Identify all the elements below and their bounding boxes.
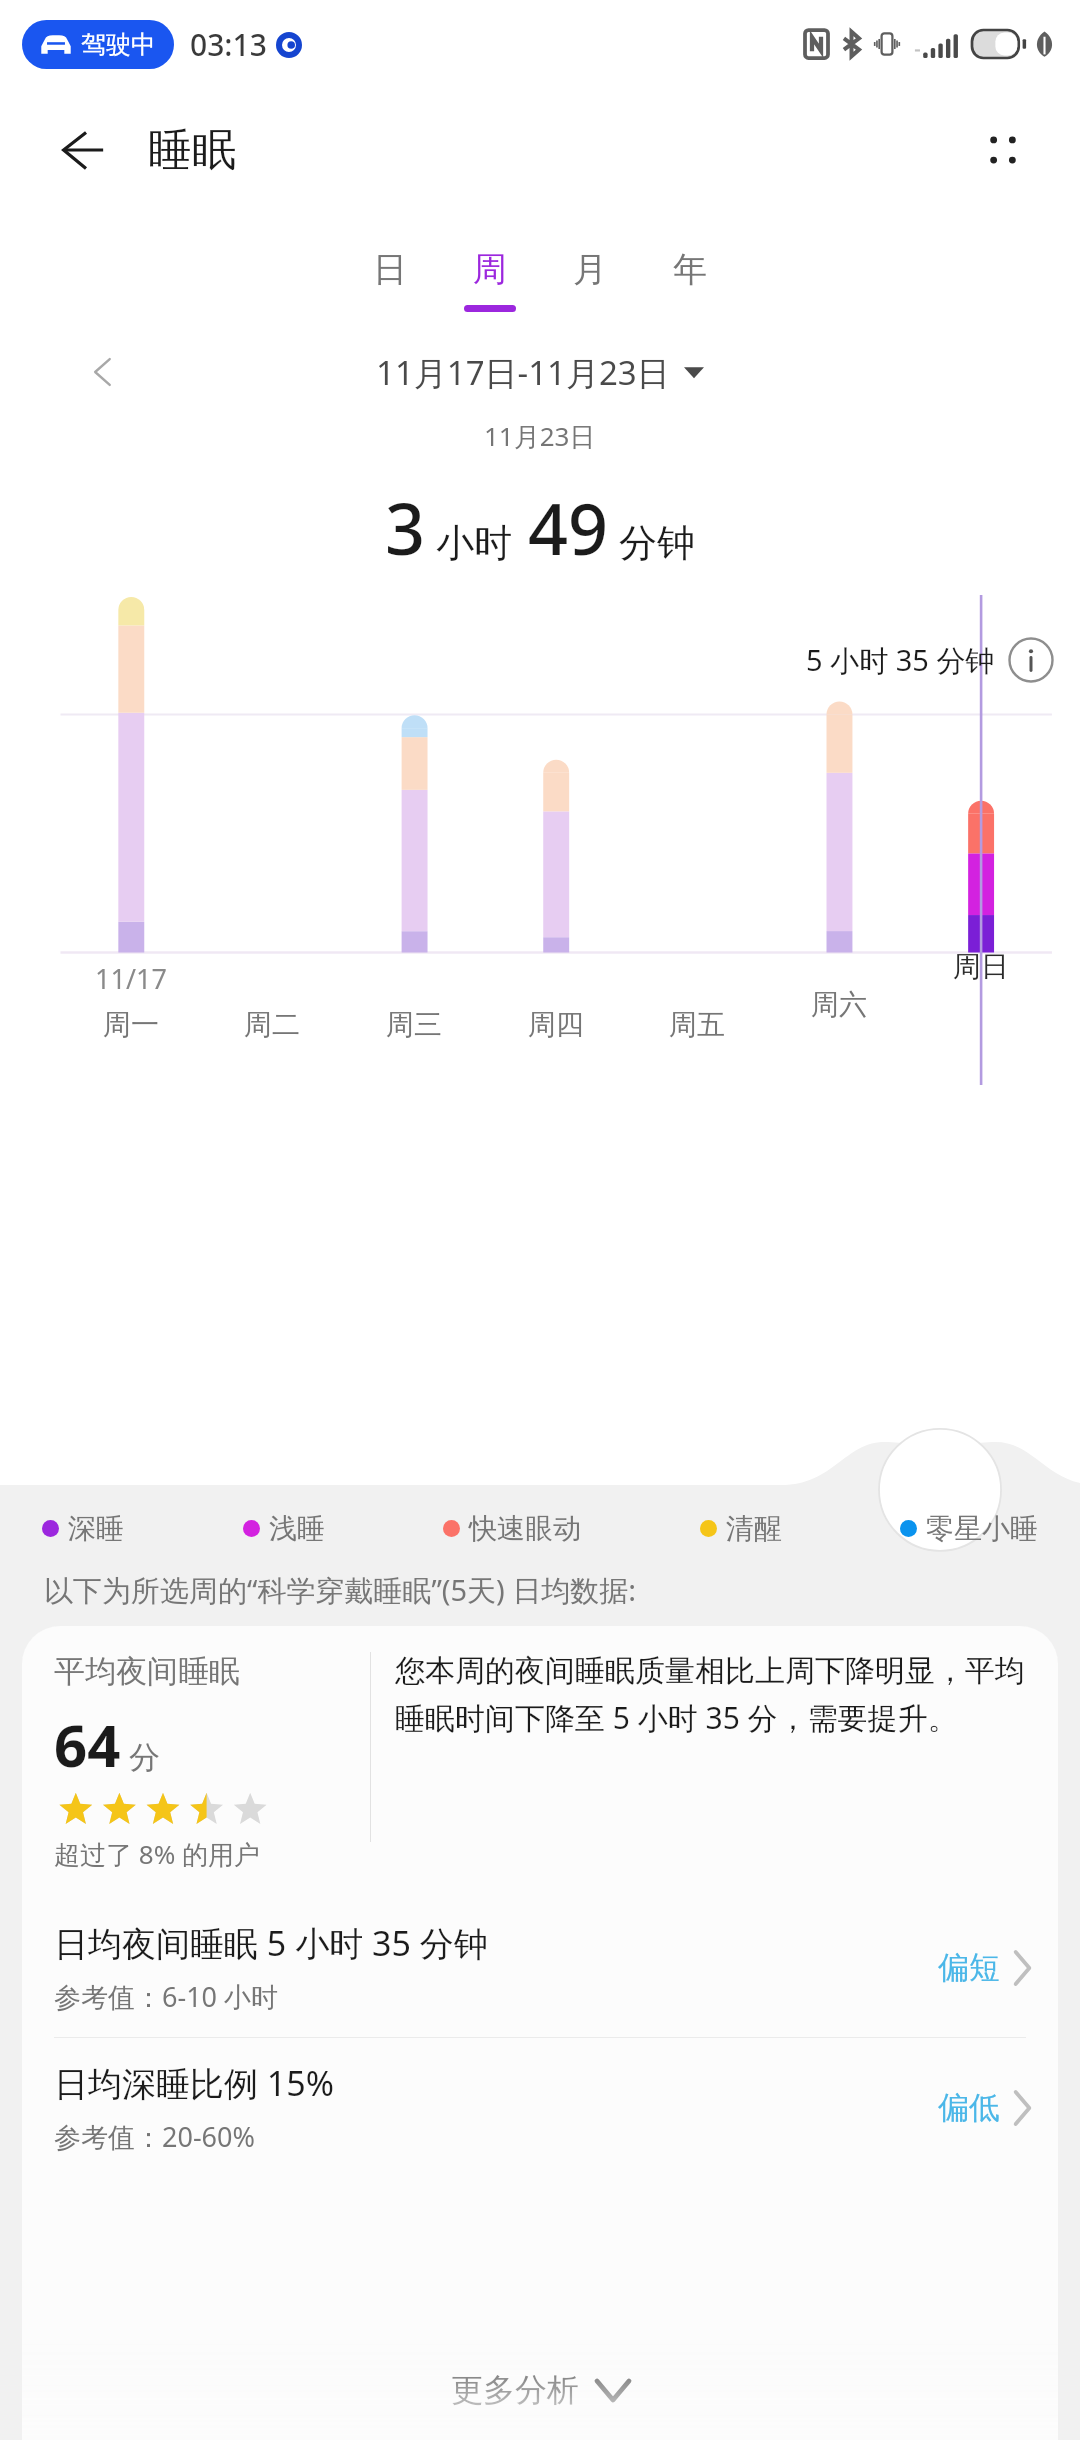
staticText: 清醒 bbox=[726, 1511, 782, 1546]
button[interactable]: 日均夜间睡眠 5 小时 35 分钟 bbox=[22, 1898, 1058, 2037]
staticText: 周一 bbox=[103, 1007, 159, 1042]
staticText: 您本周的夜间睡眠质量相比上周下降明显，平均睡眠时间下降至 5 小时 35 分，需… bbox=[395, 1652, 1032, 1738]
staticText: 驾驶中 bbox=[81, 29, 156, 60]
staticText: 49 bbox=[528, 480, 609, 575]
staticText: 快速眼动 bbox=[469, 1511, 581, 1546]
staticText: 周六 bbox=[811, 987, 867, 1022]
staticText: 年 bbox=[673, 248, 707, 291]
button[interactable]: 清醒 bbox=[700, 1511, 782, 1546]
staticText: 超过了 8% 的用户 bbox=[54, 1836, 260, 1872]
staticText: 5 小时 35 分钟 bbox=[806, 640, 995, 680]
staticText: 周五 bbox=[669, 1007, 725, 1042]
staticText: 小时 bbox=[436, 519, 512, 567]
button[interactable]: 年 bbox=[640, 246, 740, 314]
staticText: 周日 bbox=[953, 949, 1009, 984]
button[interactable]: Info bbox=[1008, 637, 1054, 683]
staticText: 64 bbox=[54, 1705, 121, 1784]
button[interactable]: 快速眼动 bbox=[443, 1511, 581, 1546]
button[interactable]: 零星小睡 bbox=[900, 1511, 1038, 1546]
staticText: 更多分析 bbox=[451, 2370, 579, 2410]
staticText: 3 bbox=[385, 480, 426, 575]
button[interactable]: More options bbox=[970, 117, 1036, 183]
staticText: 周二 bbox=[244, 1007, 300, 1042]
staticText: 偏短 bbox=[938, 1948, 1000, 1987]
staticText: 分钟 bbox=[619, 519, 695, 567]
staticText: 周 bbox=[473, 248, 507, 291]
staticText: 参考值：6-10 小时 bbox=[54, 1978, 279, 2015]
button[interactable]: 日 bbox=[340, 246, 440, 314]
button[interactable]: 驾驶中 bbox=[22, 20, 174, 69]
staticText: 零星小睡 bbox=[926, 1511, 1038, 1546]
button[interactable]: 月 bbox=[540, 246, 640, 314]
staticText: 以下为所选周的“科学穿戴睡眠”(5天) 日均数据: bbox=[44, 1570, 637, 1610]
staticText: 日均深睡比例 15% bbox=[54, 2060, 334, 2106]
staticText: 日 bbox=[373, 248, 407, 291]
staticText: 偏低 bbox=[938, 2088, 1000, 2127]
staticText: 月 bbox=[573, 248, 607, 291]
button[interactable]: 11月17日-11月23日 bbox=[376, 350, 704, 395]
staticText: 日均夜间睡眠 5 小时 35 分钟 bbox=[54, 1920, 488, 1966]
staticText: 周三 bbox=[386, 1007, 442, 1042]
staticText: 03:13 bbox=[190, 24, 267, 65]
staticText: 平均夜间睡眠 bbox=[54, 1652, 240, 1691]
button[interactable]: 更多分析 bbox=[451, 2370, 629, 2410]
staticText: 深睡 bbox=[68, 1511, 124, 1546]
staticText: 周四 bbox=[528, 1007, 584, 1042]
button[interactable]: Back bbox=[48, 116, 116, 184]
staticText: 浅睡 bbox=[269, 1511, 325, 1546]
button[interactable]: 周 bbox=[440, 246, 540, 314]
button[interactable]: 日均深睡比例 15% bbox=[22, 2038, 1058, 2177]
button[interactable]: 浅睡 bbox=[243, 1511, 325, 1546]
staticText: 分 bbox=[129, 1738, 160, 1777]
staticText: 参考值：20-60% bbox=[54, 2118, 255, 2155]
staticText: 11月17日-11月23日 bbox=[376, 350, 670, 395]
staticText: 11/17 bbox=[95, 960, 167, 997]
staticText: 11月23日 bbox=[484, 418, 596, 454]
staticText: 睡眠 bbox=[148, 123, 236, 178]
button[interactable]: Previous week bbox=[74, 343, 132, 401]
button[interactable]: 深睡 bbox=[42, 1511, 124, 1546]
